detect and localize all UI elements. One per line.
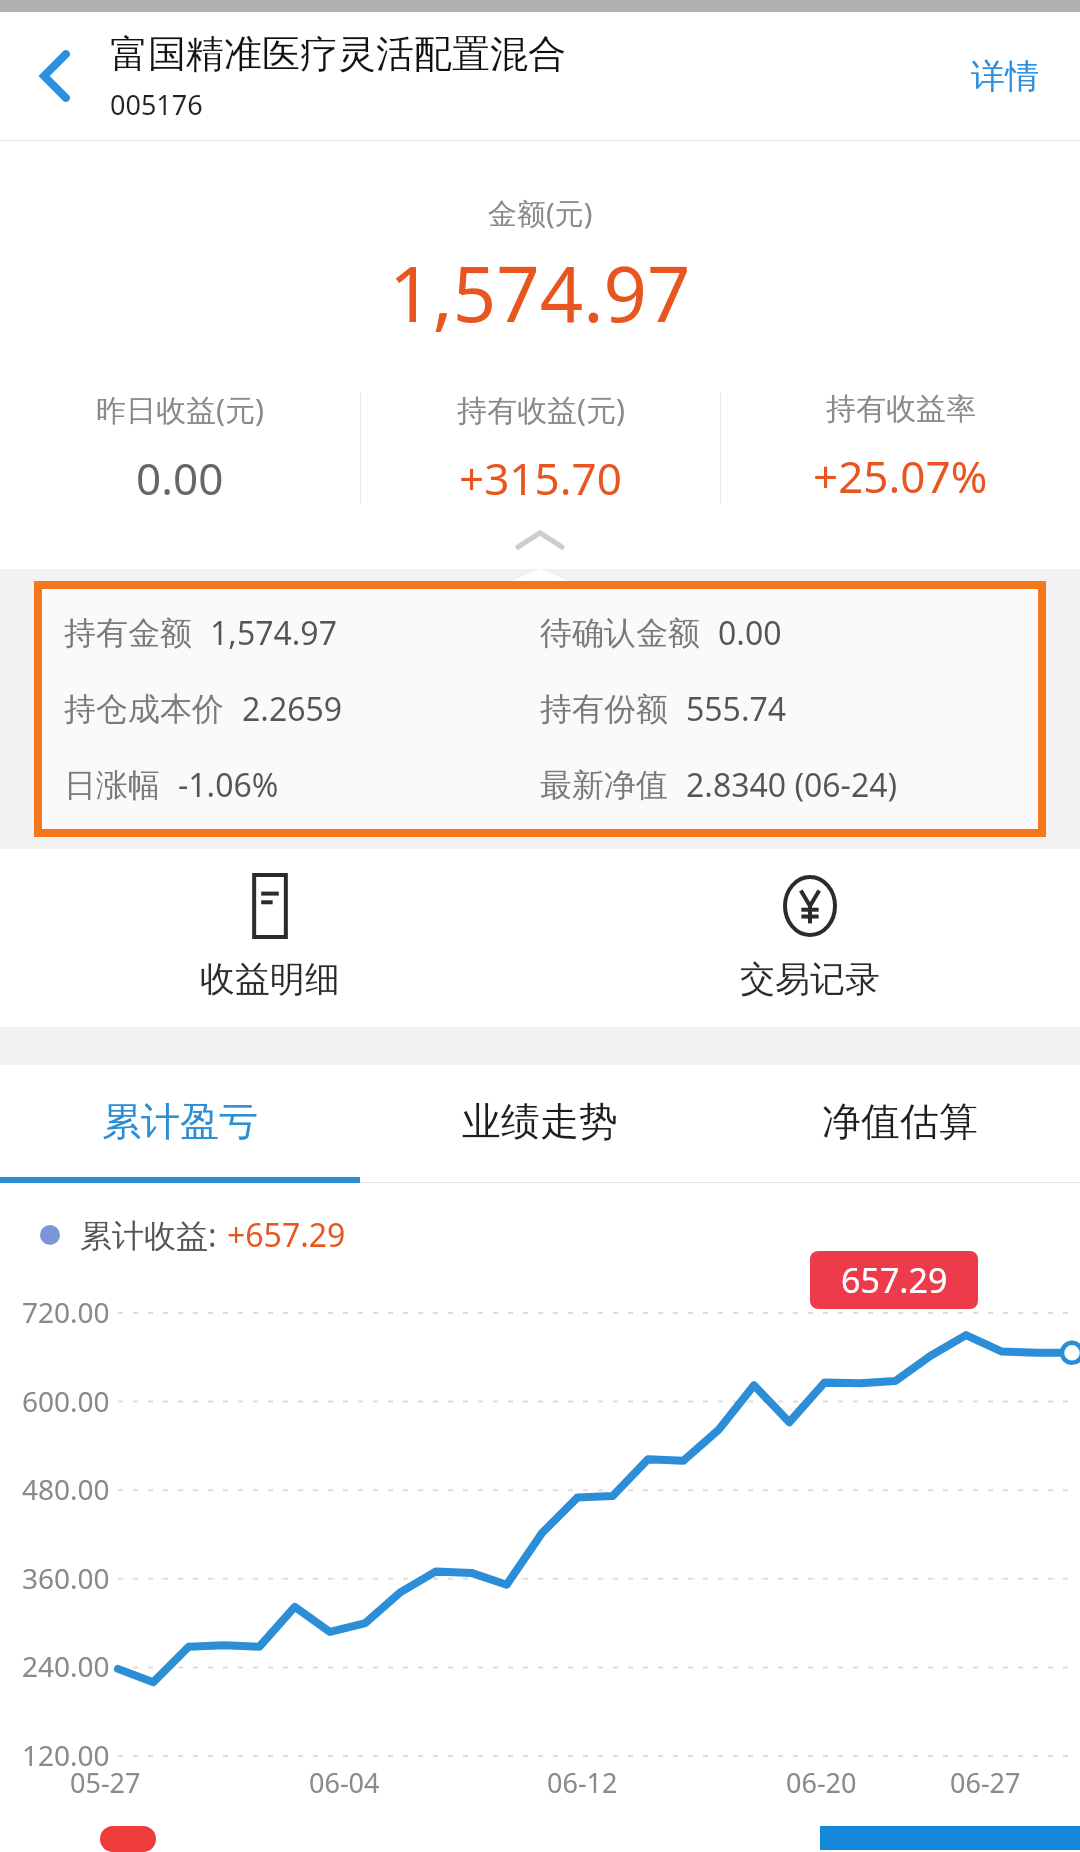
staticText: 1,574.97: [389, 241, 691, 345]
button[interactable]: Transaction records: [540, 849, 1080, 1027]
staticText: 06-04: [309, 1764, 380, 1801]
staticText: 0.00: [718, 611, 782, 655]
button[interactable]: Earnings detail: [0, 849, 540, 1027]
staticText: 持有收益(元): [457, 389, 625, 430]
staticText: 累计收益:: [80, 1213, 217, 1257]
staticText: 交易记录: [740, 957, 880, 1001]
staticText: 1,574.97: [210, 611, 337, 655]
staticText: +657.29: [227, 1213, 346, 1257]
staticText: 收益明细: [200, 957, 340, 1001]
staticText: 05-27: [70, 1764, 141, 1801]
staticText: 2.2659: [242, 687, 343, 731]
button[interactable]: 净值估算: [720, 1065, 1080, 1177]
button[interactable]: 持有收益(元): [361, 385, 720, 511]
button[interactable]: 持有收益率: [721, 385, 1080, 511]
staticText: 待确认金额: [540, 613, 700, 653]
staticText: 日涨幅: [64, 765, 160, 805]
staticText: 累计盈亏: [102, 1097, 258, 1146]
staticText: 金额(元): [488, 193, 593, 233]
button[interactable]: 业绩走势: [360, 1065, 720, 1177]
staticText: 720.00: [22, 1293, 110, 1331]
staticText: 持有收益率: [826, 390, 976, 428]
staticText: 业绩走势: [462, 1097, 618, 1146]
staticText: 360.00: [22, 1559, 110, 1597]
staticText: 详情: [971, 55, 1039, 98]
staticText: 06-20: [786, 1764, 857, 1801]
staticText: 持有金额: [64, 613, 192, 653]
button[interactable]: 累计盈亏: [0, 1065, 360, 1177]
staticText: 持有份额: [540, 689, 668, 729]
button[interactable]: 详情: [930, 12, 1080, 140]
button[interactable]: Collapse holding details: [0, 511, 1080, 569]
staticText: 持仓成本价: [64, 689, 224, 729]
staticText: 555.74: [686, 687, 787, 731]
staticText: 最新净值: [540, 765, 668, 805]
staticText: 480.00: [22, 1470, 110, 1508]
staticText: 2.8340 (06-24): [686, 763, 898, 807]
button[interactable]: 昨日收益(元): [0, 385, 360, 511]
staticText: 富国精准医疗灵活配置混合: [110, 30, 566, 78]
staticText: -1.06%: [178, 763, 279, 807]
staticText: 240.00: [22, 1647, 110, 1685]
staticText: 06-27: [950, 1764, 1021, 1801]
staticText: +315.70: [459, 448, 622, 508]
staticText: 600.00: [22, 1382, 110, 1420]
staticText: 净值估算: [822, 1097, 978, 1146]
staticText: +25.07%: [813, 446, 988, 506]
staticText: 0.00: [136, 448, 224, 508]
staticText: 06-12: [547, 1764, 618, 1801]
staticText: 120.00: [22, 1736, 110, 1774]
staticText: 昨日收益(元): [96, 389, 264, 430]
staticText: 657.29: [841, 1257, 948, 1303]
staticText: 005176: [110, 86, 203, 123]
button[interactable]: Back: [0, 12, 110, 140]
